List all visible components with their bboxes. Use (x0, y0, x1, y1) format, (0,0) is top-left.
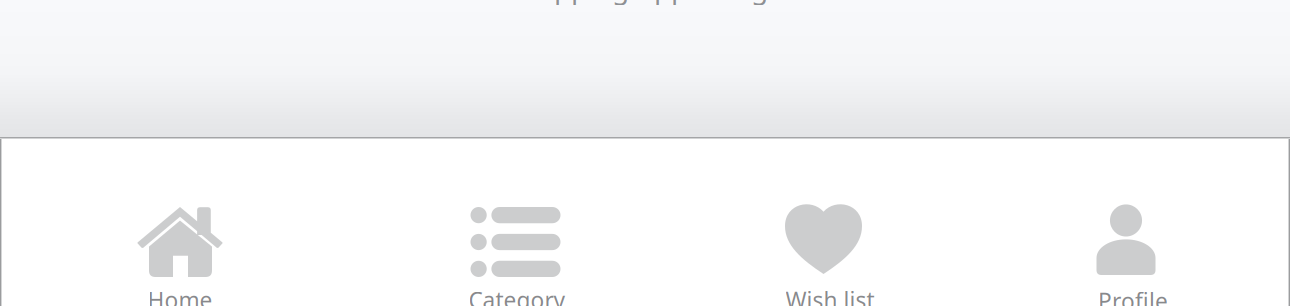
staticText: Profile (1098, 286, 1168, 306)
button[interactable]: Home (0, 137, 360, 306)
staticText: Category (468, 285, 565, 306)
button[interactable]: Profile (986, 137, 1280, 306)
button[interactable]: Wish list (674, 137, 986, 306)
staticText: Home (147, 285, 212, 306)
button[interactable]: Category (360, 137, 674, 306)
staticText: Wish list (785, 285, 874, 306)
staticText: Shopping App Design (505, 0, 785, 6)
